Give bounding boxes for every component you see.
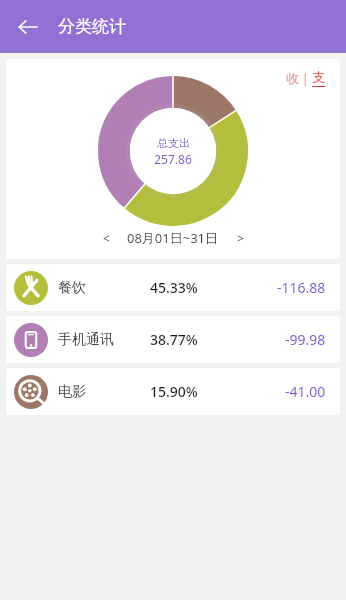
staticText: 收 xyxy=(286,70,299,86)
button[interactable]: 收 xyxy=(283,68,302,88)
staticText: < xyxy=(103,230,110,246)
button[interactable]: 支 xyxy=(309,67,328,89)
staticText: 257.86 xyxy=(154,151,192,167)
button[interactable]: 餐饮 xyxy=(6,264,340,311)
staticText: -41.00 xyxy=(285,382,326,401)
staticText: | xyxy=(302,70,309,86)
staticText: 手机通讯 xyxy=(58,331,150,349)
staticText: > xyxy=(237,230,244,246)
staticText: 38.77% xyxy=(150,330,198,349)
staticText: 45.33% xyxy=(150,278,198,297)
staticText: 08月01日~31日 xyxy=(127,229,219,247)
button[interactable]: 手机通讯 xyxy=(6,316,340,363)
staticText: 餐饮 xyxy=(58,279,150,297)
staticText: 分类统计 xyxy=(58,16,126,37)
staticText: 电影 xyxy=(58,383,150,401)
staticText: -99.98 xyxy=(285,330,326,349)
button[interactable]: Next period xyxy=(227,225,253,251)
staticText: -116.88 xyxy=(277,278,326,297)
staticText: 总支出 xyxy=(157,136,190,150)
button[interactable]: 电影 xyxy=(6,368,340,415)
button[interactable]: Previous period xyxy=(93,225,119,251)
staticText: 支 xyxy=(312,69,325,85)
staticText: 15.90% xyxy=(150,382,198,401)
button[interactable]: Back xyxy=(8,7,48,47)
